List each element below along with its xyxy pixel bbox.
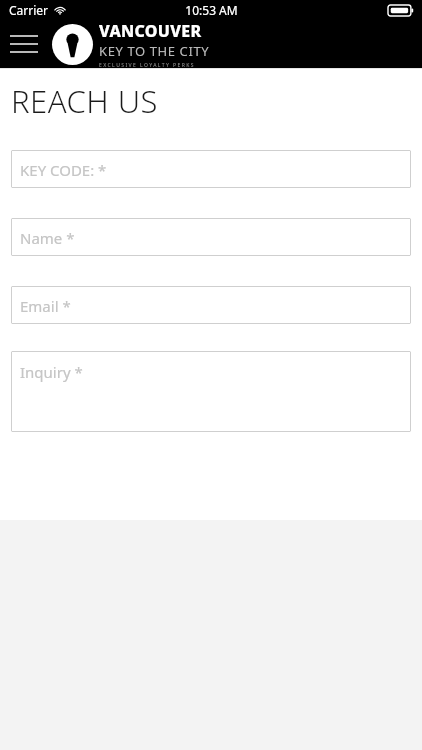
staticText: EXCLUSIVE LOYALTY PERKS [99, 62, 195, 68]
staticText: Email * [20, 296, 71, 316]
staticText: KEY TO THE CITY [99, 42, 210, 60]
button[interactable]: KEY CODE: * [11, 150, 411, 188]
staticText: Carrier [9, 2, 49, 18]
button[interactable]: VANCOUVER [52, 20, 210, 68]
staticText: Inquiry * [20, 362, 83, 382]
staticText: VANCOUVER [99, 20, 202, 42]
staticText: KEY CODE: * [20, 160, 107, 180]
staticText: 10:53 AM [185, 2, 238, 18]
staticText: REACH US [11, 80, 159, 122]
button[interactable]: Email * [11, 286, 411, 324]
button[interactable]: Name * [11, 218, 411, 256]
button[interactable]: Inquiry * [11, 351, 411, 432]
button[interactable]: Open navigation menu [6, 28, 42, 60]
staticText: Name * [20, 228, 75, 248]
